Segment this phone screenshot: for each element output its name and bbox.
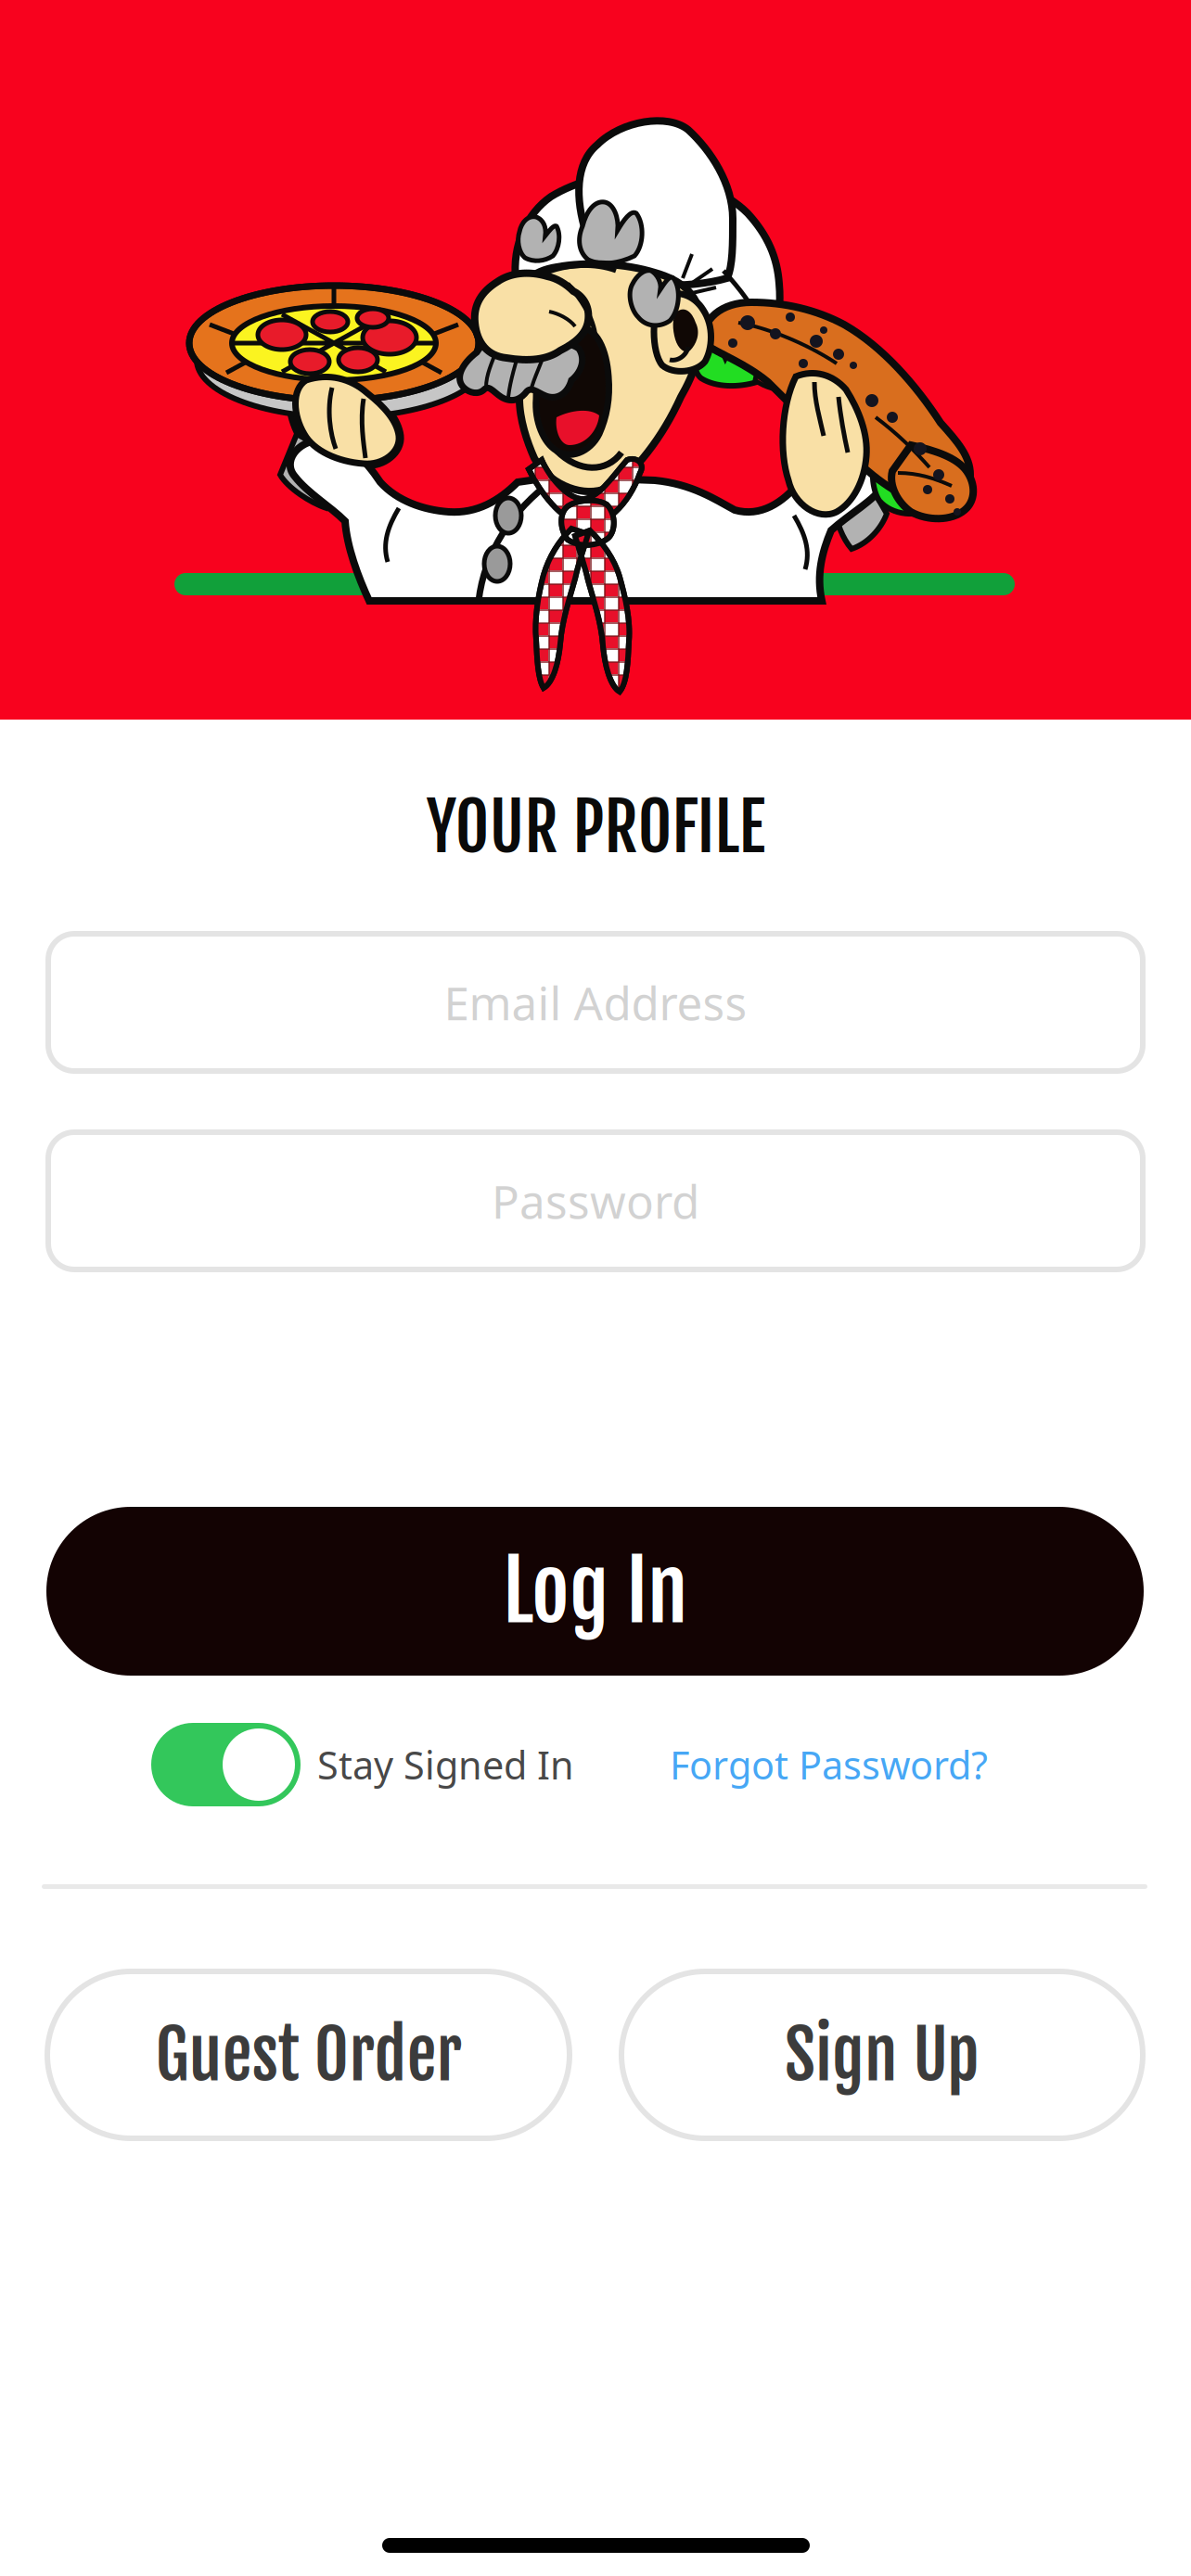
staticText: YOUR PROFILE (426, 786, 765, 868)
staticText: Guest Order (155, 2013, 461, 2097)
staticText: Email Address (444, 972, 747, 1033)
staticText: Sign Up (785, 2013, 980, 2097)
button[interactable]: Log In (46, 1507, 1144, 1676)
button[interactable]: Guest Order (47, 1971, 570, 2138)
button[interactable]: Forgot Password? (670, 1723, 990, 1806)
button[interactable]: Sign Up (621, 1971, 1143, 2138)
staticText: Password (492, 1170, 699, 1231)
button[interactable]: Password (48, 1132, 1143, 1269)
staticText: Forgot Password? (670, 1739, 988, 1790)
button[interactable]: Email Address (48, 934, 1143, 1071)
staticText: Log In (503, 1540, 687, 1643)
button[interactable]: Stay Signed In (151, 1723, 569, 1806)
staticText: Stay Signed In (317, 1739, 574, 1790)
